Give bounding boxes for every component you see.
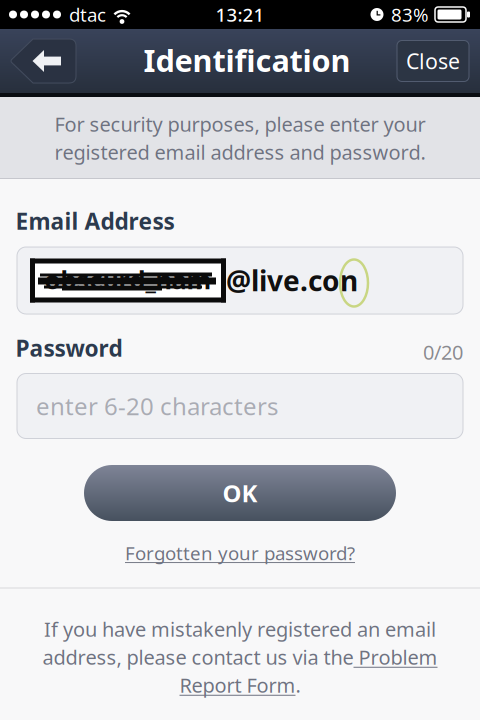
staticText: If you have mistakenly registered an ema… bbox=[44, 616, 436, 642]
staticText: 13:21 bbox=[215, 2, 264, 27]
button[interactable]: Problem bbox=[353, 644, 437, 670]
button[interactable]: Close bbox=[397, 40, 469, 81]
staticText: For security purposes, please enter your bbox=[54, 111, 425, 137]
staticText: 83% bbox=[391, 2, 429, 27]
staticText: Email Address bbox=[15, 206, 174, 236]
staticText: obscurd_nam bbox=[44, 263, 211, 296]
staticText: @live.con bbox=[226, 262, 358, 299]
staticText: Password bbox=[15, 333, 122, 363]
staticText: address, please contact us via the bbox=[42, 644, 353, 670]
button[interactable]: Back bbox=[10, 39, 76, 83]
staticText: Report Form bbox=[179, 672, 295, 698]
staticText: Identification bbox=[143, 40, 350, 80]
staticText: registered email address and password. bbox=[54, 139, 425, 165]
button[interactable]: Forgotten your password? bbox=[121, 538, 359, 568]
staticText: . bbox=[295, 672, 300, 698]
staticText: Close bbox=[406, 47, 460, 75]
staticText: 0/20 bbox=[423, 339, 463, 365]
staticText: dtac bbox=[69, 2, 106, 27]
staticText: enter 6-20 characters bbox=[36, 390, 278, 422]
staticText: OK bbox=[222, 477, 257, 509]
button[interactable]: OK bbox=[84, 465, 396, 521]
button[interactable]: Report Form bbox=[179, 672, 295, 698]
staticText: Problem bbox=[353, 644, 437, 670]
staticText: Forgotten your password? bbox=[125, 541, 355, 565]
